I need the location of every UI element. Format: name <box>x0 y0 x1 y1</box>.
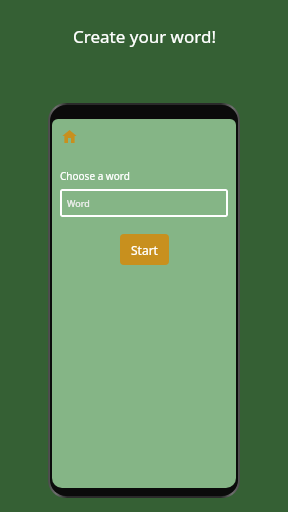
button[interactable]: Home <box>58 125 80 147</box>
staticText: Create your word! <box>73 25 216 48</box>
staticText: Choose a word <box>60 169 130 183</box>
staticText: Start <box>131 242 158 258</box>
staticText: Word <box>67 197 90 209</box>
button[interactable]: Start <box>120 234 169 265</box>
button[interactable]: Word <box>60 189 228 217</box>
